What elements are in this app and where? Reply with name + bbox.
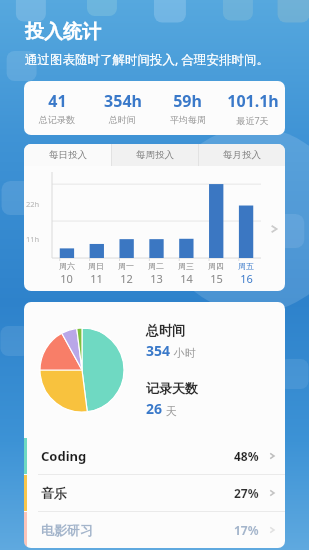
staticText: 投入统计 <box>25 20 101 44</box>
staticText: 41 <box>48 90 67 112</box>
staticText: 周一 <box>118 261 134 271</box>
staticText: 14 <box>180 271 193 286</box>
staticText: 总时间 <box>109 114 136 125</box>
staticText: 每日投入 <box>49 149 87 161</box>
staticText: 通过图表随时了解时间投入, 合理安排时间。 <box>25 51 270 68</box>
button[interactable]: 41 <box>24 81 285 135</box>
staticText: 22h <box>26 199 40 209</box>
staticText: 354h <box>104 90 142 112</box>
staticText: 11 <box>90 271 103 286</box>
other: Details <box>267 451 277 461</box>
staticText: 15 <box>210 271 223 286</box>
staticText: 音乐 <box>41 485 234 501</box>
staticText: 周二 <box>148 261 164 271</box>
button[interactable]: Coding <box>24 438 285 474</box>
staticText: 周五 <box>238 261 254 271</box>
staticText: 记录天数 <box>146 380 198 396</box>
staticText: 11h <box>26 234 40 244</box>
staticText: 17% <box>234 522 259 538</box>
staticText: 周六 <box>59 261 75 271</box>
staticText: 101.1h <box>227 90 279 112</box>
staticText: 周四 <box>208 261 224 271</box>
staticText: 每月投入 <box>223 149 261 161</box>
staticText: 总记录数 <box>39 114 75 125</box>
button[interactable]: 每周投入 <box>112 144 198 166</box>
other: Details <box>267 488 277 498</box>
staticText: 周三 <box>178 261 194 271</box>
staticText: 周日 <box>88 261 104 271</box>
button[interactable]: 每日投入 <box>24 144 111 166</box>
staticText: 354 <box>146 341 171 360</box>
staticText: 天 <box>163 403 177 418</box>
staticText: 最近7天 <box>236 114 269 126</box>
button[interactable]: 电影研习 <box>24 512 285 548</box>
staticText: 48% <box>234 448 259 464</box>
staticText: 总时间 <box>146 322 185 338</box>
staticText: 平均每周 <box>170 114 206 125</box>
other: Details <box>267 525 277 535</box>
staticText: 59h <box>173 90 202 112</box>
button[interactable]: 音乐 <box>24 475 285 511</box>
staticText: 16 <box>240 271 253 286</box>
button[interactable]: 每月投入 <box>199 144 285 166</box>
staticText: 10 <box>60 271 73 286</box>
staticText: 13 <box>150 271 163 286</box>
staticText: 电影研习 <box>41 522 234 538</box>
staticText: 26 <box>146 399 163 418</box>
staticText: 27% <box>234 485 259 501</box>
staticText: 12 <box>120 271 133 286</box>
staticText: 小时 <box>171 345 196 360</box>
staticText: Coding <box>41 447 234 465</box>
staticText: 每周投入 <box>136 149 174 161</box>
